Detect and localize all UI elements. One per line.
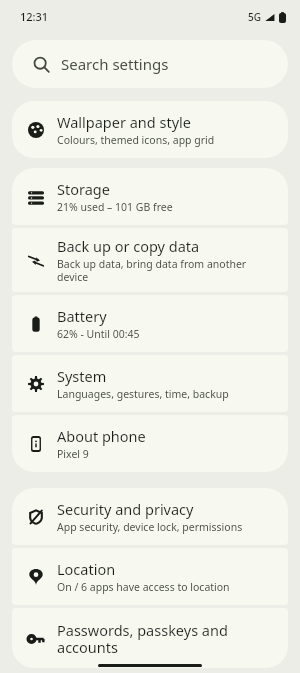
- staticText: Passwords, passkeys and accounts: [57, 620, 274, 657]
- staticText: 12:31: [20, 9, 49, 24]
- other: Battery: [28, 316, 44, 332]
- staticText: App security, device lock, permissions: [57, 520, 243, 534]
- staticText: Battery: [57, 306, 107, 326]
- button[interactable]: About phone: [12, 415, 288, 472]
- button[interactable]: Battery: [12, 295, 288, 352]
- button[interactable]: Wallpaper and style: [12, 101, 288, 158]
- staticText: 62% - Until 00:45: [57, 327, 140, 341]
- button[interactable]: Passwords, passkeys and accounts: [12, 608, 288, 668]
- button[interactable]: System: [12, 355, 288, 412]
- staticText: 5G: [248, 10, 261, 24]
- staticText: Storage: [57, 179, 110, 199]
- button[interactable]: Security and privacy: [12, 488, 288, 545]
- staticText: Search settings: [61, 54, 169, 74]
- other: Passwords, passkeys and accounts: [28, 631, 44, 647]
- button[interactable]: Back up or copy data: [12, 228, 288, 292]
- button[interactable]: Storage: [12, 168, 288, 225]
- staticText: Security and privacy: [57, 499, 194, 519]
- other: About phone: [28, 436, 44, 452]
- other: System: [28, 376, 44, 392]
- staticText: 21% used – 101 GB free: [57, 200, 173, 214]
- staticText: Back up data, bring data from another de…: [57, 257, 274, 284]
- other: Location: [28, 569, 44, 585]
- staticText: Location: [57, 559, 116, 579]
- staticText: Languages, gestures, time, backup: [57, 387, 229, 401]
- staticText: Pixel 9: [57, 447, 89, 461]
- staticText: System: [57, 366, 107, 386]
- other: Back up or copy data: [28, 253, 44, 269]
- staticText: About phone: [57, 426, 146, 446]
- staticText: On / 6 apps have access to location: [57, 580, 230, 594]
- staticText: Back up or copy data: [57, 236, 200, 256]
- button[interactable]: Search settings: [12, 40, 288, 88]
- other: Storage: [28, 189, 44, 205]
- staticText: Wallpaper and style: [57, 112, 191, 132]
- button[interactable]: Location: [12, 548, 288, 605]
- staticText: Colours, themed icons, app grid: [57, 133, 215, 147]
- other: Wallpaper and style: [28, 122, 44, 138]
- other: Security and privacy: [28, 509, 44, 525]
